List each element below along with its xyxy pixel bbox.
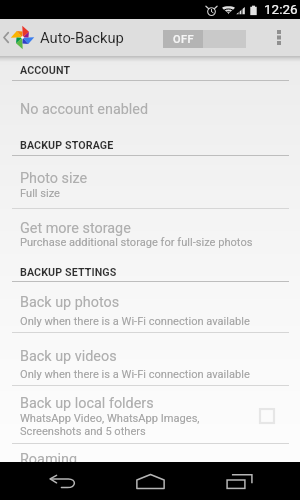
staticText: WhatsApp Video, WhatsApp Images, Screens… — [20, 412, 200, 437]
button[interactable]: Roaming — [0, 451, 300, 468]
staticText: OFF — [173, 33, 194, 46]
staticText: Back up videos — [20, 348, 117, 365]
button[interactable]: Home — [106, 462, 194, 500]
button[interactable]: Back up photos — [0, 294, 300, 311]
button[interactable]: Get more storage — [0, 220, 300, 237]
staticText: Get more storage — [20, 220, 131, 237]
staticText: Full size — [20, 187, 60, 200]
button[interactable]: Back up local folders — [0, 395, 300, 412]
button[interactable]: Navigate up — [0, 26, 124, 49]
staticText: No account enabled — [20, 101, 149, 118]
button[interactable]: More options — [264, 19, 294, 56]
button[interactable]: Auto-Backup toggle, off — [163, 30, 246, 48]
staticText: ACCOUNT — [20, 64, 71, 77]
staticText: Roaming — [20, 451, 78, 468]
button[interactable]: Back up videos — [0, 348, 300, 365]
button[interactable]: No account enabled — [0, 101, 300, 118]
staticText: Only when there is a Wi-Fi connection av… — [20, 315, 250, 328]
staticText: BACKUP STORAGE — [20, 139, 114, 152]
button[interactable]: Back up local folders checkbox — [260, 409, 274, 423]
button[interactable]: Recent apps — [195, 462, 283, 500]
staticText: Back up photos — [20, 294, 120, 311]
staticText: Photo size — [20, 170, 88, 187]
staticText: Only when there is a Wi-Fi connection av… — [20, 368, 250, 381]
button[interactable]: Photo size — [0, 170, 300, 187]
staticText: Back up local folders — [20, 395, 154, 412]
button[interactable]: Back — [18, 462, 106, 500]
staticText: Purchase additional storage for full-siz… — [20, 236, 253, 249]
staticText: 12:26 — [264, 1, 298, 17]
staticText: BACKUP SETTINGS — [20, 266, 117, 279]
staticText: Auto-Backup — [40, 29, 124, 46]
